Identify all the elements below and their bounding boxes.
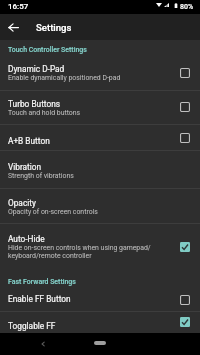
staticText: 80%: [180, 3, 194, 11]
button[interactable]: Toggle setting: [176, 98, 194, 116]
button[interactable]: Back: [37, 338, 49, 350]
button[interactable]: Opacity: [0, 188, 200, 223]
staticText: 16:57: [8, 2, 29, 11]
staticText: Fast Forward Settings: [8, 278, 76, 286]
staticText: Togglable FF: [8, 321, 56, 331]
staticText: Opacity: [8, 198, 36, 208]
button[interactable]: Vibration: [0, 150, 200, 188]
staticText: Hide on-screen controls when using gamep…: [8, 244, 180, 260]
staticText: Opacity of on-screen controls: [8, 208, 98, 216]
button[interactable]: Toggle setting: [176, 129, 194, 147]
button[interactable]: Toggle setting: [176, 238, 194, 256]
staticText: Vibration: [8, 162, 42, 172]
staticText: Touch Controller Settings: [8, 46, 87, 54]
staticText: Enable dynamically positioned D-pad: [8, 74, 121, 82]
button[interactable]: Turbo Buttons: [0, 90, 200, 124]
staticText: Strength of vibrations: [8, 172, 74, 180]
staticText: Turbo Buttons: [8, 99, 61, 109]
button[interactable]: Navigate up: [0, 14, 26, 40]
button[interactable]: Toggle setting: [176, 64, 194, 82]
button[interactable]: A+B Button: [0, 124, 200, 151]
button[interactable]: Dynamic D-Pad: [0, 56, 200, 90]
button[interactable]: Home: [94, 341, 106, 345]
button[interactable]: Enable FF Button: [0, 288, 200, 311]
staticText: Dynamic D-Pad: [8, 64, 65, 74]
button[interactable]: Auto-Hide: [0, 223, 200, 270]
staticText: Touch and hold buttons: [8, 109, 81, 117]
staticText: Settings: [36, 22, 72, 33]
staticText: Auto-Hide: [8, 234, 45, 244]
button[interactable]: Togglable FF: [0, 311, 200, 333]
button[interactable]: Toggle setting: [176, 291, 194, 309]
staticText: Enable FF Button: [8, 294, 71, 304]
button[interactable]: Toggle setting: [176, 313, 194, 331]
staticText: A+B Button: [8, 136, 50, 146]
